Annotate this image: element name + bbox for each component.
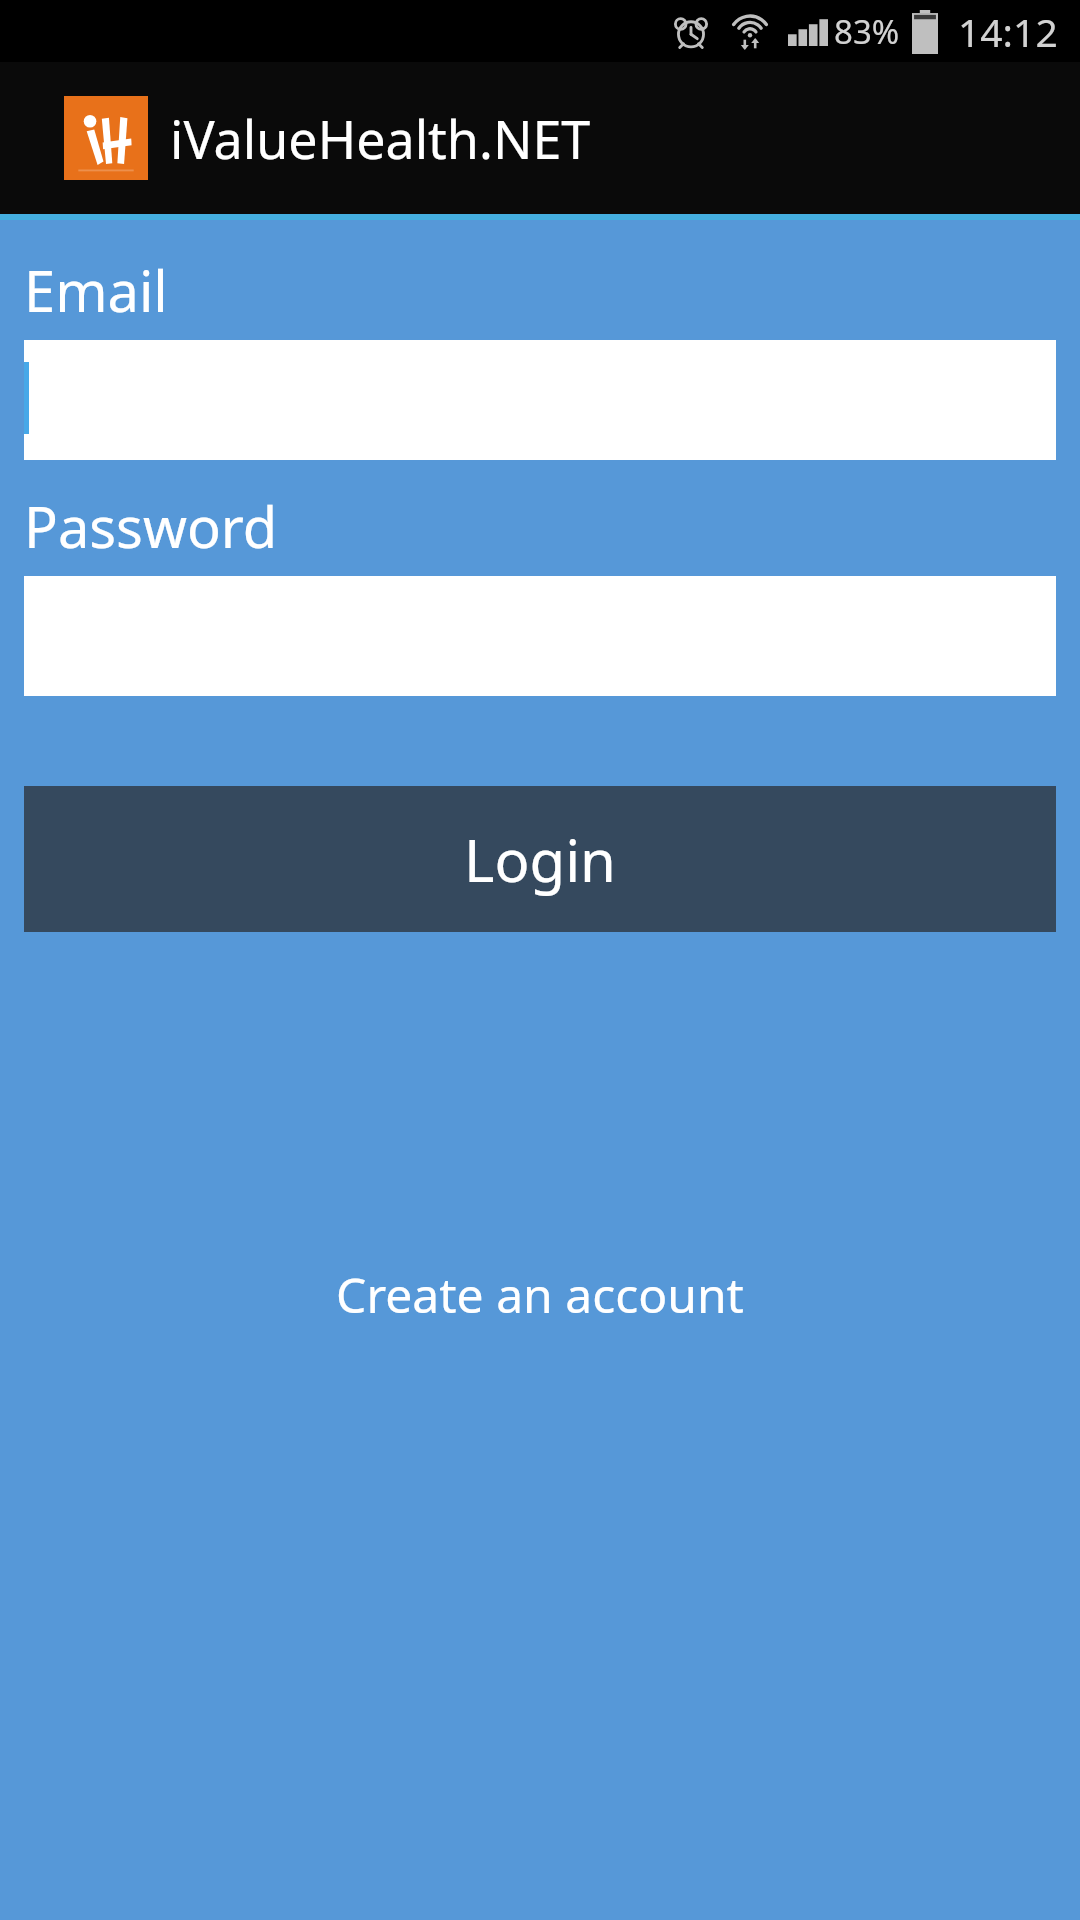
staticText: 14:12: [958, 5, 1058, 58]
button[interactable]: Login: [24, 786, 1056, 932]
staticText: iValueHealth.NET: [170, 103, 591, 174]
staticText: 83%: [834, 9, 900, 54]
staticText: Create an account: [336, 1262, 744, 1327]
staticText: Password: [24, 488, 278, 564]
button[interactable]: Create an account: [0, 1248, 1080, 1340]
staticText: Login: [464, 820, 616, 899]
staticText: Email: [24, 252, 168, 328]
button[interactable]: Email input: [24, 340, 1056, 460]
